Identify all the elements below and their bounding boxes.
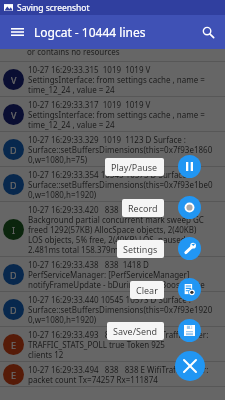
button[interactable]: Record [178, 196, 201, 219]
button[interactable]: Menu [0, 15, 34, 49]
staticText: 10-27 16:29:33.354 10545 10573 D Surface… [28, 169, 213, 200]
button[interactable]: V [0, 97, 225, 132]
staticText: E [11, 369, 17, 381]
button[interactable]: Save or send [178, 319, 201, 342]
staticText: D [10, 179, 17, 191]
button[interactable] [0, 49, 225, 400]
button[interactable]: E [0, 362, 225, 387]
staticText: 10-27 16:29:33.493 838 838 E WifiTraffic… [28, 329, 209, 360]
button[interactable]: Close [175, 351, 205, 381]
staticText: I [12, 224, 16, 236]
button[interactable]: Play or pause [178, 155, 201, 178]
button[interactable]: I [0, 202, 225, 257]
staticText: Play/Pause [111, 161, 158, 173]
staticText: D [10, 269, 17, 281]
button[interactable]: E [0, 327, 225, 362]
button[interactable]: D [0, 132, 225, 167]
staticText: Saving screenshot [17, 2, 90, 14]
staticText: Logcat - 10444 lines [34, 24, 146, 40]
staticText: Save/Send [113, 325, 158, 337]
staticText: D [10, 144, 17, 156]
staticText: 10-27 16:29:33.315 1019 1019 V SettingsI… [28, 64, 205, 95]
staticText: Clear [136, 284, 158, 296]
button[interactable]: Play/Pause [105, 158, 164, 176]
staticText: D [10, 304, 17, 316]
button[interactable]: D [0, 167, 225, 202]
staticText: V [11, 74, 17, 86]
staticText: Record [128, 202, 158, 214]
button[interactable]: Settings [178, 237, 201, 260]
button[interactable]: D [0, 257, 225, 292]
button[interactable]: D [0, 292, 225, 327]
staticText: 10-27 16:29:33.317 1019 1019 V SettingsI… [28, 99, 205, 130]
staticText: 10-27 16:29:33.329 1019 1123 D Surface :… [28, 134, 213, 165]
button[interactable]: Settings [117, 240, 164, 258]
staticText: Settings [123, 243, 158, 255]
button[interactable]: Search [191, 15, 225, 49]
button[interactable]: Clear [130, 281, 164, 299]
staticText: 10-27 16:29:33.438 838 1418 D PerfServic… [28, 259, 205, 290]
button[interactable]: Clear [178, 278, 201, 301]
staticText: 10-27 16:29:33.440 10545 10573 D Surface… [28, 294, 213, 325]
staticText: 10-27 16:29:33.420 838 853 I art : Backg… [28, 204, 204, 255]
staticText: E [11, 339, 17, 351]
button[interactable]: Save/Send [107, 322, 164, 340]
staticText: or contains no resources [27, 46, 120, 57]
staticText: V [11, 109, 17, 121]
button[interactable]: V [0, 62, 225, 97]
staticText: 10-27 16:29:33.494 838 838 E WifiTraffic… [28, 364, 209, 385]
button[interactable]: Record [122, 199, 164, 217]
